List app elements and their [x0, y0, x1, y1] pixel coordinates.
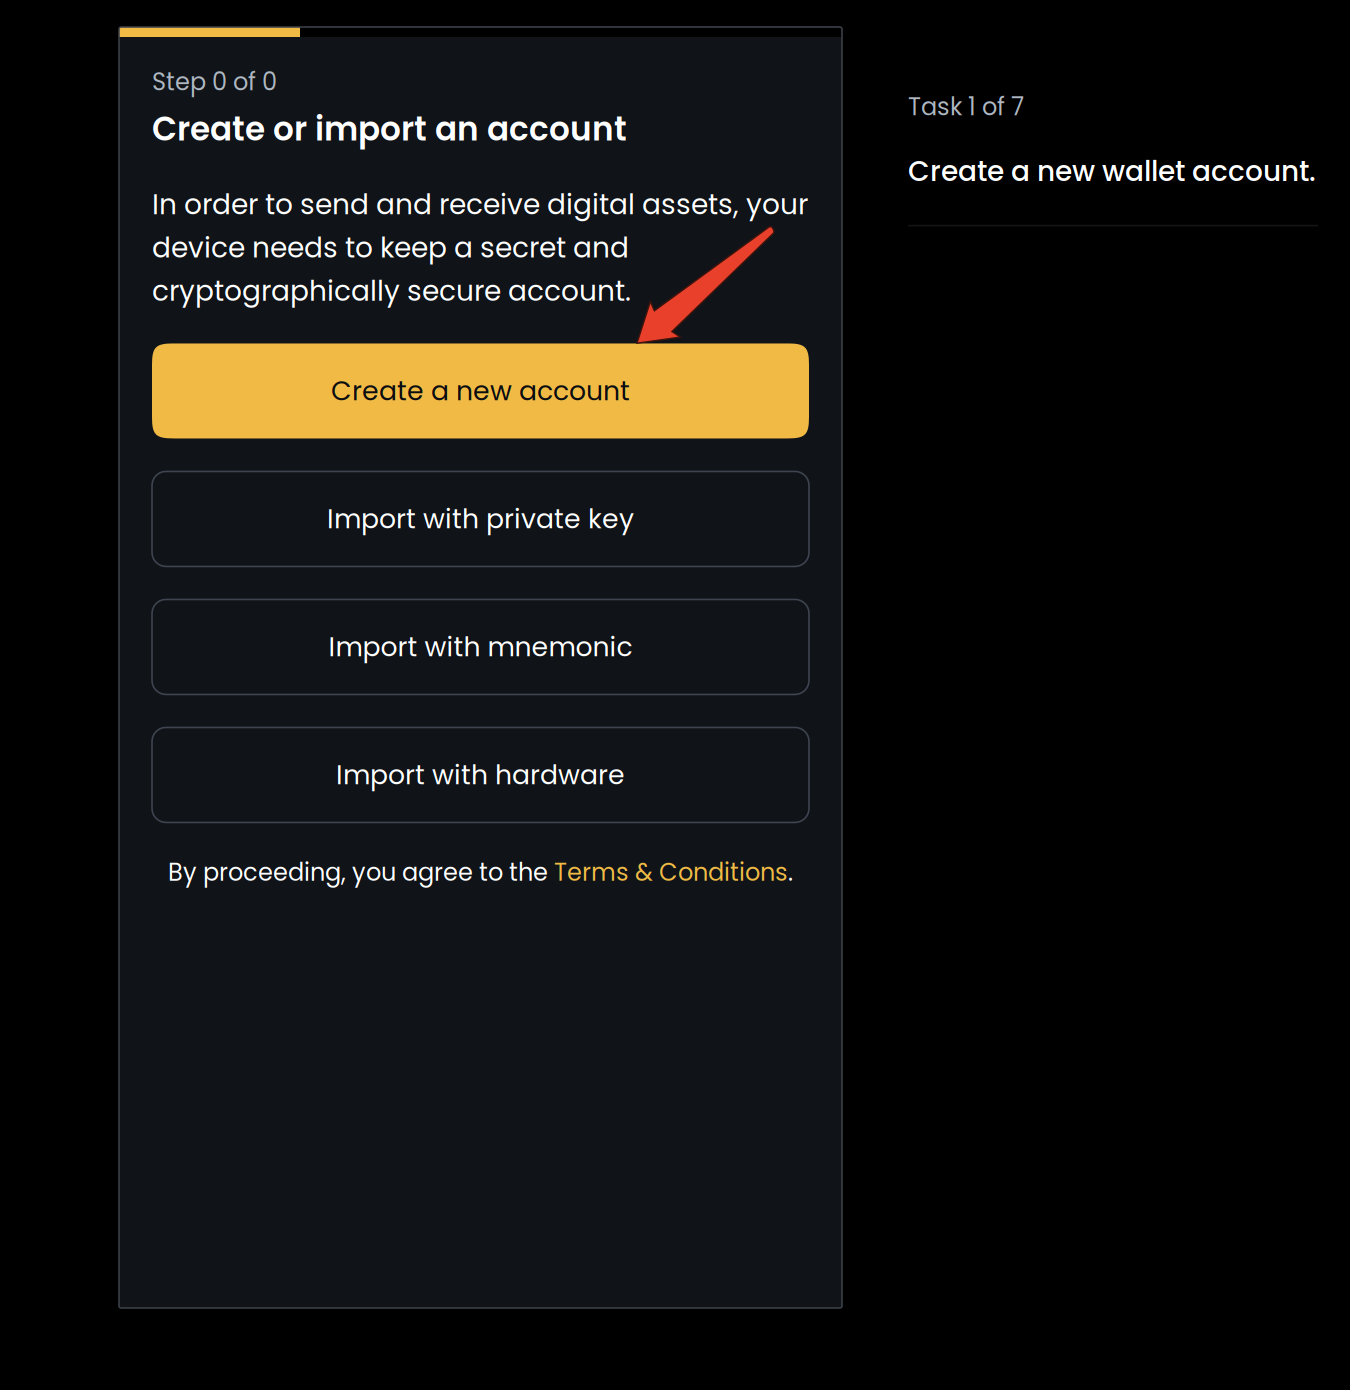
staticText: Create a new account [331, 372, 630, 410]
button[interactable]: Create a new account [152, 343, 809, 438]
staticText: Step 0 of 0 [152, 65, 277, 99]
staticText: Create or import an account [152, 106, 627, 152]
staticText: In order to send and receive digital ass… [152, 185, 808, 310]
button[interactable]: Import with mnemonic [152, 599, 809, 694]
staticText: Create a new wallet account. [908, 152, 1316, 191]
button[interactable]: By proceeding, you agree to the [152, 855, 809, 889]
staticText: . [788, 855, 793, 889]
staticText: Terms & Conditions [554, 855, 788, 889]
staticText: Task 1 of 7 [908, 90, 1024, 124]
staticText: By proceeding, you agree to the [168, 855, 554, 889]
staticText: Import with private key [327, 500, 634, 538]
staticText: Import with mnemonic [328, 628, 632, 666]
button[interactable]: Import with hardware [152, 727, 809, 822]
button[interactable]: Import with private key [152, 471, 809, 566]
staticText: Import with hardware [336, 756, 625, 794]
